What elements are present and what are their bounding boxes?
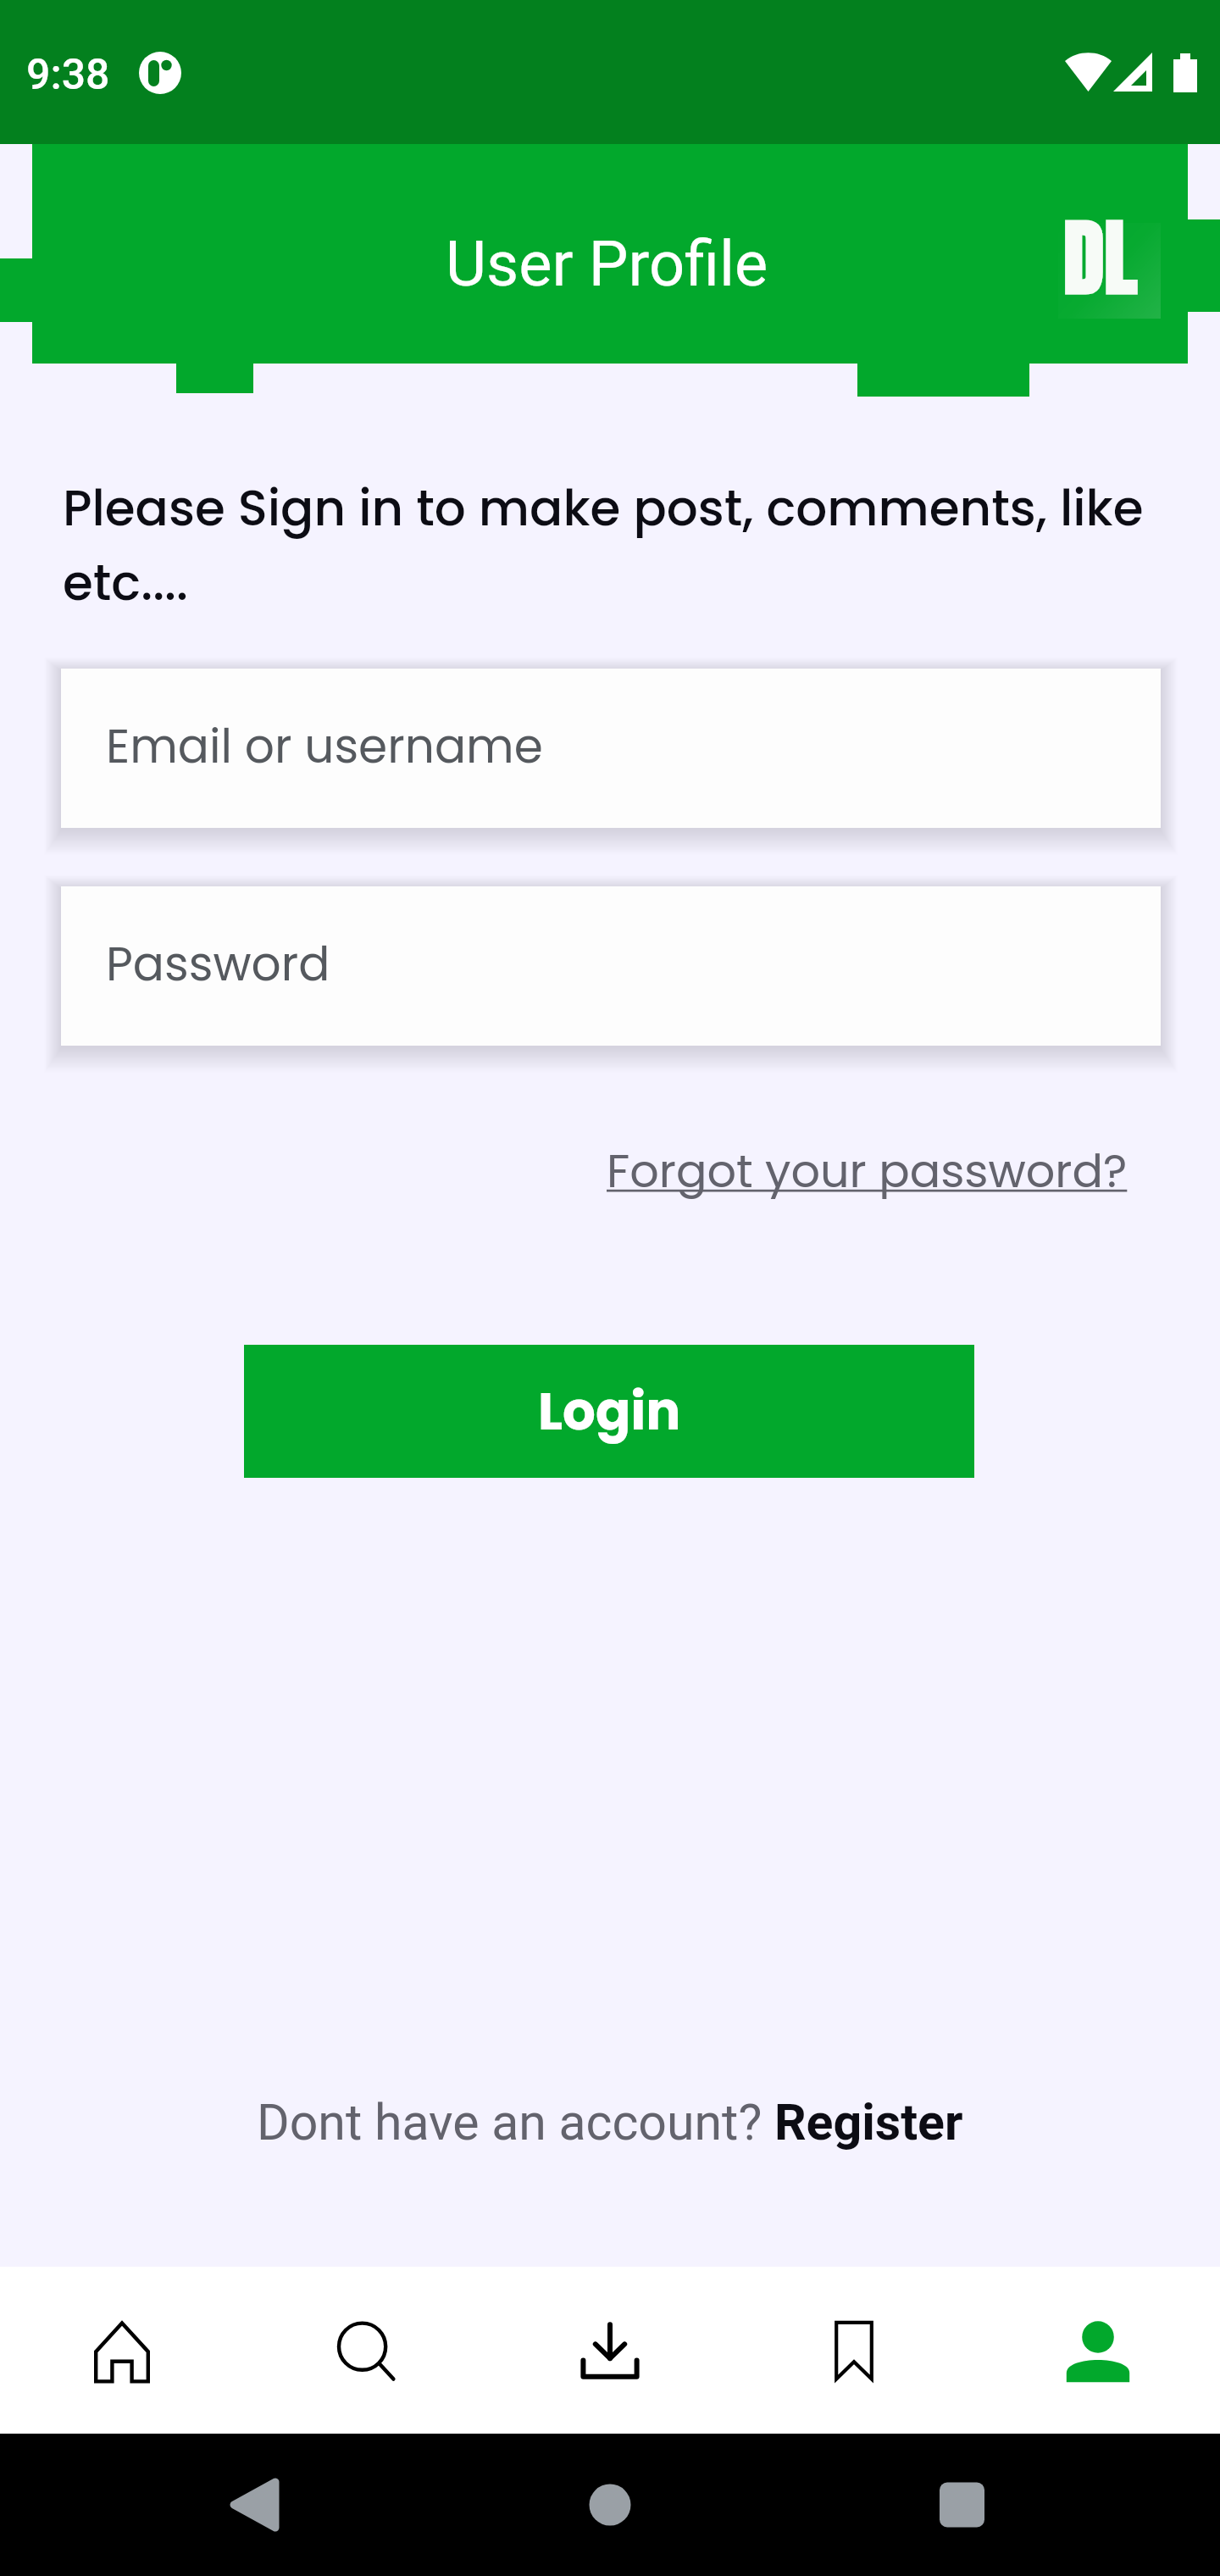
button[interactable]: Bookmarks — [732, 2267, 976, 2434]
staticText: Login — [538, 1375, 681, 1447]
staticText: Please Sign in to make post, comments, l… — [63, 474, 1157, 617]
staticText: Dont have an account? Register — [257, 2093, 963, 2151]
staticText: DL — [1063, 196, 1138, 297]
button[interactable]: Profile — [976, 2267, 1220, 2434]
button[interactable]: Login — [244, 1345, 974, 1478]
button[interactable]: Forgot your password? — [607, 1139, 1128, 1203]
button[interactable]: Password — [61, 886, 1161, 1046]
button[interactable]: DL logo — [1047, 196, 1154, 297]
button[interactable]: Downloads — [488, 2267, 732, 2434]
button[interactable]: Email or username — [61, 669, 1161, 828]
staticText: User Profile — [446, 227, 768, 301]
button[interactable]: Home — [0, 2267, 244, 2434]
staticText: Password — [106, 931, 330, 997]
staticText: Forgot your password? — [607, 1139, 1128, 1203]
staticText: 9:38 — [26, 50, 110, 100]
button[interactable]: Search — [244, 2267, 488, 2434]
staticText: Email or username — [106, 713, 543, 779]
button[interactable]: Dont have an account? Register — [257, 2093, 963, 2151]
